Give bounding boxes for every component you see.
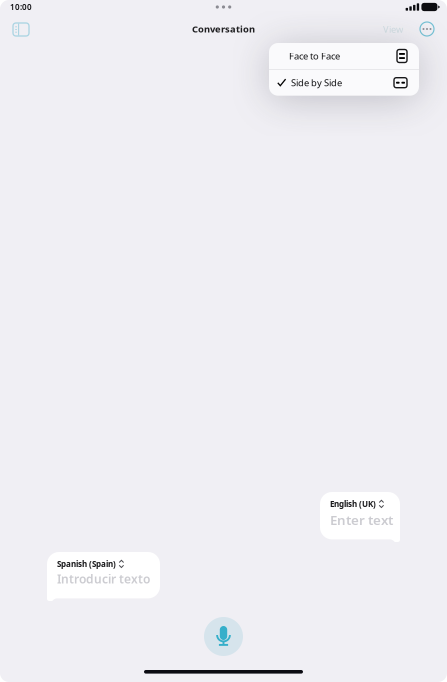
staticText: Introducir texto: [57, 571, 150, 587]
button[interactable]: Start conversation: [204, 617, 243, 656]
staticText: Conversation: [192, 23, 255, 35]
button[interactable]: View: [377, 16, 409, 42]
staticText: Spanish (Spain): [57, 559, 116, 569]
button[interactable]: English (UK): [320, 492, 400, 542]
staticText: Face to Face: [289, 50, 340, 62]
button[interactable]: Spanish (Spain): [47, 552, 160, 601]
button[interactable]: More options: [414, 16, 440, 42]
staticText: English (UK): [330, 499, 376, 509]
button[interactable]: Show Sidebar: [6, 18, 36, 41]
staticText: Enter text: [330, 511, 393, 529]
button[interactable]: Side by Side: [269, 70, 419, 96]
button[interactable]: Face to Face: [269, 43, 419, 69]
staticText: 10:00: [10, 2, 32, 12]
staticText: View: [383, 23, 403, 35]
staticText: Side by Side: [291, 76, 342, 89]
